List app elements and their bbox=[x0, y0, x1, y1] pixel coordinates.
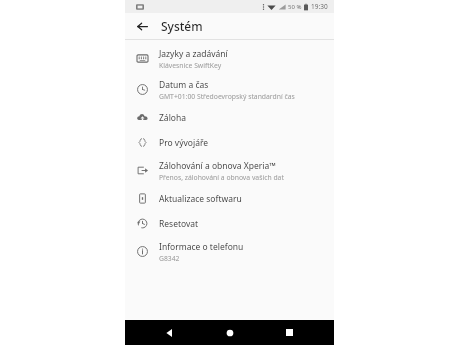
button[interactable]: Home bbox=[215, 320, 245, 345]
staticText: 50 % bbox=[288, 3, 302, 11]
staticText: Datum a čas bbox=[159, 79, 209, 91]
staticText: Pro vývojáře bbox=[159, 137, 209, 149]
button[interactable]: Zálohování a obnova Xperia™ bbox=[125, 155, 334, 186]
staticText: Klávesnice SwiftKey bbox=[159, 61, 222, 70]
staticText: Jazyky a zadávání bbox=[159, 48, 228, 60]
staticText: Resetovat bbox=[159, 218, 199, 230]
button[interactable]: Informace o telefonu bbox=[125, 236, 334, 267]
staticText: Informace o telefonu bbox=[159, 241, 244, 253]
button[interactable]: Pro vývojáře bbox=[125, 130, 334, 155]
staticText: GMT+01:00 Středoevropský standardní čas bbox=[159, 92, 295, 101]
staticText: Aktualizace softwaru bbox=[159, 193, 242, 205]
button[interactable]: Datum a čas bbox=[125, 74, 334, 105]
button[interactable]: Aktualizace softwaru bbox=[125, 186, 334, 211]
staticText: Zálohování a obnova Xperia™ bbox=[159, 160, 276, 172]
staticText: G8342 bbox=[159, 254, 180, 263]
staticText: Systém bbox=[161, 18, 203, 34]
button[interactable]: Resetovat bbox=[125, 211, 334, 236]
staticText: Přenos, zálohování a obnova vašich dat bbox=[159, 173, 284, 182]
staticText: Záloha bbox=[159, 112, 186, 124]
button[interactable]: Jazyky a zadávání bbox=[125, 43, 334, 74]
button[interactable]: Back bbox=[155, 320, 185, 345]
staticText: 19:30 bbox=[311, 2, 328, 11]
button[interactable]: Back bbox=[130, 14, 154, 38]
button[interactable]: Záloha bbox=[125, 105, 334, 130]
button[interactable]: Recents bbox=[274, 320, 304, 345]
